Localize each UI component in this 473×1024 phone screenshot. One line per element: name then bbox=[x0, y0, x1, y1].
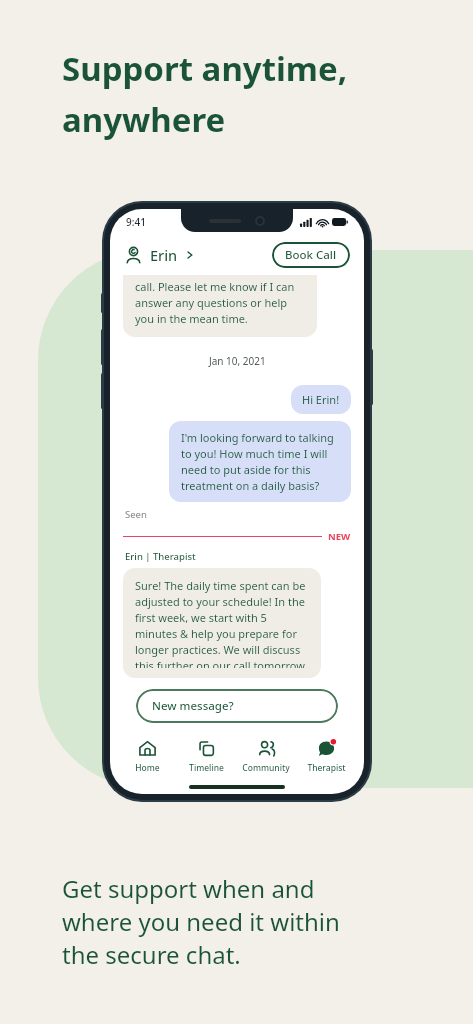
button[interactable]: Book Call bbox=[272, 242, 350, 268]
button[interactable]: New message? bbox=[136, 689, 338, 723]
staticText: Erin bbox=[150, 245, 178, 265]
staticText: Support anytime, bbox=[62, 46, 348, 91]
staticText: Therapist bbox=[307, 762, 346, 774]
staticText: Book Call bbox=[285, 247, 337, 263]
staticText: Erin | Therapist bbox=[125, 550, 196, 563]
staticText: New message? bbox=[152, 698, 234, 714]
staticText: Sure! The daily time spent can be adjust… bbox=[135, 578, 309, 668]
button[interactable]: Community bbox=[236, 734, 296, 780]
staticText: Timeline bbox=[189, 762, 224, 774]
staticText: Seen bbox=[125, 508, 147, 521]
button[interactable]: Home bbox=[118, 734, 177, 780]
button[interactable]: Timeline bbox=[177, 734, 236, 780]
button[interactable]: Therapist bbox=[296, 734, 356, 780]
staticText: Community bbox=[242, 762, 290, 774]
staticText: Jan 10, 2021 bbox=[209, 354, 266, 368]
staticText: call. Please let me know if I can answer… bbox=[135, 279, 305, 326]
button[interactable]: Erin bbox=[124, 245, 200, 265]
staticText: NEW bbox=[328, 530, 351, 543]
other: Therapist bbox=[317, 739, 336, 758]
staticText: the secure chat. bbox=[62, 938, 241, 971]
staticText: Home bbox=[135, 762, 160, 774]
staticText: Get support when and bbox=[62, 872, 315, 905]
staticText: anywhere bbox=[62, 97, 226, 142]
staticText: 9:41 bbox=[126, 215, 146, 229]
staticText: where you need it within bbox=[62, 905, 340, 938]
staticText: Hi Erin! bbox=[302, 392, 340, 407]
staticText: I'm looking forward to talking to you! H… bbox=[181, 430, 339, 493]
